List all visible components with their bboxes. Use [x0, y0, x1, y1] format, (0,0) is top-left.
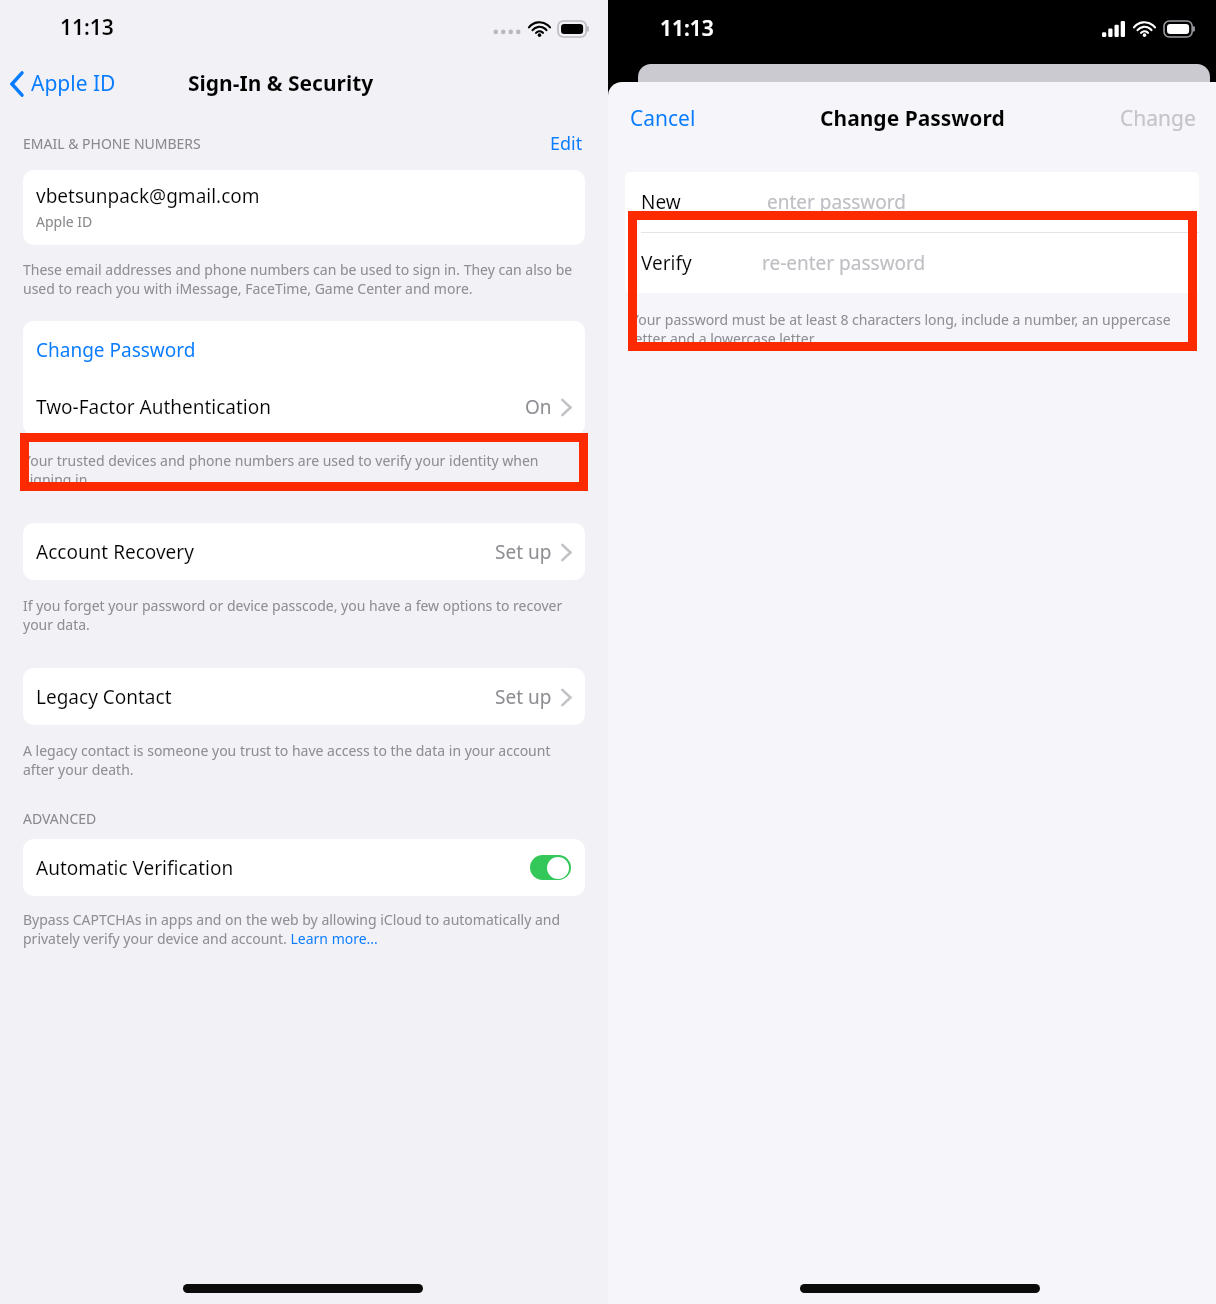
button[interactable]: Cancel — [608, 96, 718, 141]
staticText: These email addresses and phone numbers … — [23, 260, 585, 298]
button[interactable]: Edit — [546, 128, 587, 159]
staticText: ADVANCED — [23, 809, 97, 828]
staticText: 11:13 — [660, 14, 714, 43]
staticText: Verify — [641, 250, 692, 276]
staticText: Your trusted devices and phone numbers a… — [23, 451, 585, 489]
staticText: Account Recovery — [36, 539, 194, 565]
staticText: Apple ID — [36, 212, 93, 231]
button[interactable]: vbetsunpack@gmail.com — [23, 170, 585, 245]
staticText: re-enter password — [762, 250, 926, 276]
staticText: New — [641, 189, 681, 215]
button[interactable]: Two-Factor Authentication — [23, 378, 585, 435]
staticText: Automatic Verification — [36, 855, 234, 881]
button[interactable]: Automatic Verification toggle, on — [530, 855, 571, 880]
staticText: EMAIL & PHONE NUMBERS — [23, 134, 201, 153]
staticText: Apple ID — [31, 69, 116, 98]
button[interactable]: Automatic Verification — [23, 839, 585, 896]
button[interactable]: Apple ID — [0, 64, 126, 103]
staticText: Bypass CAPTCHAs in apps and on the web b… — [23, 910, 585, 948]
button[interactable]: New — [625, 172, 1199, 232]
staticText: Set up — [495, 539, 552, 565]
staticText: Cancel — [630, 104, 696, 133]
staticText: Legacy Contact — [36, 684, 172, 710]
staticText: On — [525, 394, 552, 420]
staticText: Two-Factor Authentication — [36, 394, 271, 420]
button[interactable]: Legacy Contact — [23, 668, 585, 725]
button[interactable]: Change Password — [23, 321, 585, 378]
staticText: 11:13 — [60, 13, 114, 42]
staticText: Your password must be at least 8 charact… — [631, 310, 1193, 348]
staticText: Change — [1120, 104, 1196, 133]
staticText: A legacy contact is someone you trust to… — [23, 741, 585, 779]
staticText: Change Password — [36, 337, 196, 363]
staticText: enter password — [767, 189, 906, 215]
button[interactable]: Change — [1100, 96, 1216, 141]
staticText: If you forget your password or device pa… — [23, 596, 585, 634]
staticText: Edit — [550, 131, 583, 156]
staticText: Change Password — [820, 104, 1005, 133]
button[interactable]: Verify — [625, 233, 1199, 293]
staticText: vbetsunpack@gmail.com — [36, 183, 260, 209]
staticText: Sign-In & Security — [188, 69, 374, 98]
button[interactable]: Account Recovery — [23, 523, 585, 580]
staticText: Set up — [495, 684, 552, 710]
